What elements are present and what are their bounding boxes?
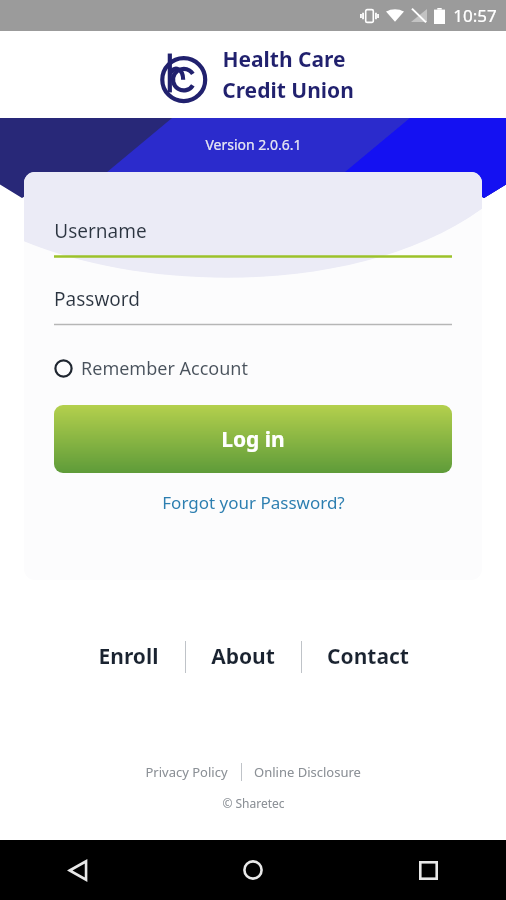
button[interactable]: Remember Account [54, 356, 452, 381]
button[interactable]: Password [54, 286, 452, 326]
staticText: Password [54, 286, 140, 312]
button[interactable]: Back [56, 848, 100, 892]
staticText: Forgot your Password? [162, 491, 345, 514]
staticText: Enroll [98, 642, 159, 671]
staticText: Log in [221, 425, 285, 454]
staticText: Health Care [222, 45, 346, 74]
staticText: 10:57 [453, 4, 497, 27]
staticText: Privacy Policy [145, 763, 228, 781]
staticText: Username [54, 218, 147, 244]
staticText: Version 2.0.6.1 [205, 135, 302, 154]
button[interactable]: Username [54, 218, 452, 258]
button[interactable]: About [197, 636, 289, 677]
staticText: Remember Account [81, 356, 248, 381]
staticText: © Sharetec [222, 795, 285, 811]
button[interactable]: Contact [313, 636, 423, 677]
staticText: Online Disclosure [254, 763, 361, 781]
button[interactable]: Online Disclosure [246, 759, 369, 785]
button[interactable]: Privacy Policy [137, 759, 236, 785]
staticText: Contact [327, 642, 409, 671]
button[interactable]: Forgot your Password? [54, 491, 452, 514]
button[interactable]: Home [231, 848, 275, 892]
staticText: Credit Union [222, 76, 354, 105]
button[interactable]: Recents [406, 848, 450, 892]
button[interactable]: Enroll [84, 636, 173, 677]
staticText: About [211, 642, 275, 671]
button[interactable]: Log in [54, 405, 452, 473]
